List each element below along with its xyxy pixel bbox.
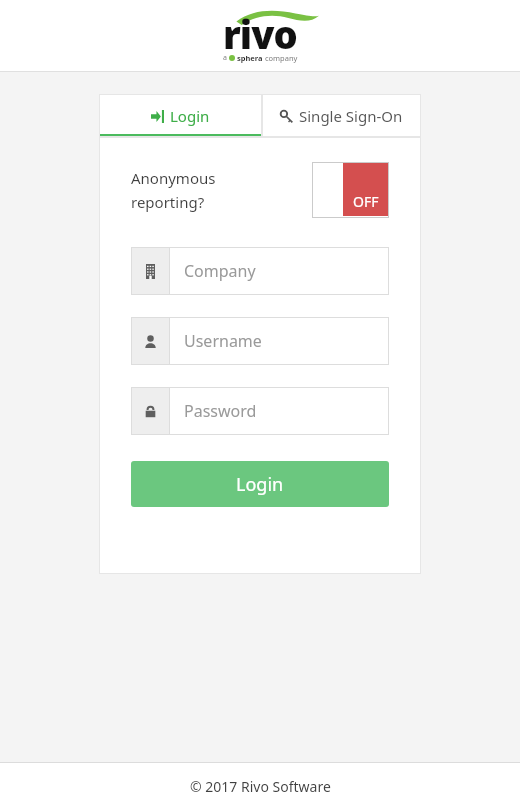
staticText: Single Sign-On bbox=[299, 106, 403, 126]
staticText: Login bbox=[236, 472, 284, 497]
staticText: a bbox=[223, 53, 229, 63]
staticText: reporting? bbox=[131, 192, 205, 212]
button[interactable]: Username bbox=[131, 317, 389, 365]
button[interactable]: Password bbox=[131, 387, 389, 435]
button[interactable]: Anonymous reporting toggle, off bbox=[312, 162, 389, 218]
staticText: Password bbox=[184, 400, 257, 422]
staticText: Anonymous bbox=[131, 168, 216, 188]
button[interactable]: Company bbox=[131, 247, 389, 295]
staticText: sphera bbox=[235, 53, 263, 63]
staticText: rivo bbox=[223, 8, 297, 53]
button[interactable]: Login bbox=[99, 94, 262, 137]
staticText: Username bbox=[184, 330, 262, 352]
staticText: company bbox=[263, 53, 298, 63]
staticText: OFF bbox=[353, 192, 379, 211]
button[interactable]: Login bbox=[131, 461, 389, 507]
staticText: © 2017 Rivo Software bbox=[190, 777, 331, 796]
button[interactable]: Single Sign-On bbox=[262, 94, 421, 137]
staticText: Company bbox=[184, 260, 256, 282]
staticText: Login bbox=[170, 106, 210, 126]
